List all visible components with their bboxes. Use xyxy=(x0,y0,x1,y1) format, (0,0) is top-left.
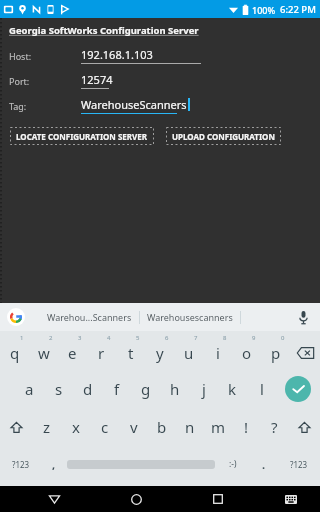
button[interactable]: i xyxy=(203,331,232,370)
button[interactable]: e xyxy=(58,331,87,370)
staticText: 6:22 PM xyxy=(280,3,316,16)
staticText: i xyxy=(216,343,220,363)
button[interactable]: Recent apps xyxy=(201,486,235,512)
staticText: p xyxy=(271,343,281,363)
staticText: 5 xyxy=(136,334,140,342)
button[interactable]: Shift xyxy=(288,408,320,446)
staticText: z xyxy=(43,417,51,437)
staticText: t xyxy=(128,343,134,363)
staticText: 0 xyxy=(281,334,285,342)
staticText: d xyxy=(83,379,93,399)
staticText: 3 xyxy=(78,334,82,342)
button[interactable]: x xyxy=(61,408,90,446)
staticText: e xyxy=(68,343,77,363)
staticText: ?123 xyxy=(290,459,308,470)
staticText: c xyxy=(101,417,109,437)
staticText: v xyxy=(130,417,138,437)
staticText: 192.168.1.103 xyxy=(81,47,153,62)
staticText: 2 xyxy=(49,334,53,342)
staticText: o xyxy=(242,343,252,363)
staticText: r xyxy=(98,343,105,363)
staticText: ? xyxy=(271,417,278,437)
staticText: 1 xyxy=(20,334,24,342)
button[interactable]: Switch keyboard xyxy=(276,486,306,512)
button[interactable]: ?123 xyxy=(278,446,320,482)
staticText: y xyxy=(156,343,164,363)
staticText: 100% xyxy=(252,4,276,16)
button[interactable]: p xyxy=(261,331,290,370)
button[interactable]: ! xyxy=(232,408,260,446)
button[interactable]: q xyxy=(0,331,29,370)
staticText: s xyxy=(55,379,63,399)
staticText: m xyxy=(211,417,226,437)
button[interactable]: Shift xyxy=(0,408,32,446)
button[interactable]: :-) xyxy=(216,446,250,482)
button[interactable]: f xyxy=(102,370,131,408)
button[interactable]: k xyxy=(218,370,247,408)
button[interactable]: Google search xyxy=(7,308,25,326)
button[interactable]: y xyxy=(145,331,174,370)
staticText: Tag: xyxy=(9,100,27,112)
staticText: UPLOAD CONFIGURATION xyxy=(172,131,275,142)
button[interactable]: Home xyxy=(119,486,153,512)
button[interactable]: w xyxy=(29,331,58,370)
staticText: k xyxy=(228,379,237,399)
staticText: q xyxy=(10,343,20,363)
staticText: n xyxy=(185,417,195,437)
button[interactable]: Space xyxy=(66,446,216,482)
staticText: h xyxy=(170,379,180,399)
button[interactable]: UPLOAD CONFIGURATION xyxy=(165,127,282,145)
staticText: Port: xyxy=(9,75,30,87)
staticText: Georgia SoftWorks Configuration Server xyxy=(9,24,199,37)
staticText: a xyxy=(25,379,34,399)
staticText: 6 xyxy=(165,334,169,342)
staticText: 7 xyxy=(194,334,198,342)
button[interactable]: v xyxy=(119,408,148,446)
staticText: Warehou...Scanners xyxy=(47,311,132,323)
button[interactable]: m xyxy=(204,408,232,446)
button[interactable]: Back xyxy=(37,486,71,512)
staticText: g xyxy=(141,379,151,399)
button[interactable]: ? xyxy=(260,408,288,446)
staticText: :-) xyxy=(229,458,237,470)
button[interactable]: r xyxy=(87,331,116,370)
staticText: ! xyxy=(244,417,249,437)
button[interactable]: z xyxy=(32,408,61,446)
button[interactable]: Comma xyxy=(42,446,66,482)
staticText: 8 xyxy=(223,334,227,342)
staticText: 9 xyxy=(252,334,256,342)
button[interactable]: Backspace xyxy=(290,331,320,370)
staticText: l xyxy=(260,379,264,399)
button[interactable]: l xyxy=(247,370,276,408)
button[interactable]: b xyxy=(148,408,176,446)
button[interactable]: g xyxy=(131,370,160,408)
button[interactable]: Warehousescanners xyxy=(143,308,237,326)
button[interactable]: h xyxy=(160,370,189,408)
staticText: j xyxy=(202,379,206,399)
staticText: x xyxy=(72,417,80,437)
button[interactable]: Voice input xyxy=(292,306,314,328)
button[interactable]: n xyxy=(176,408,204,446)
button[interactable]: t xyxy=(116,331,145,370)
staticText: ?123 xyxy=(12,459,30,470)
button[interactable]: o xyxy=(232,331,261,370)
button[interactable]: j xyxy=(189,370,218,408)
button[interactable]: Period xyxy=(250,446,278,482)
staticText: LOCATE CONFIGURATION SERVER xyxy=(16,131,148,142)
button[interactable]: Enter xyxy=(276,370,320,408)
button[interactable]: s xyxy=(44,370,73,408)
button[interactable]: LOCATE CONFIGURATION SERVER xyxy=(9,127,155,145)
staticText: , xyxy=(52,457,56,472)
button[interactable]: u xyxy=(174,331,203,370)
staticText: . xyxy=(262,457,266,472)
staticText: f xyxy=(114,379,120,399)
button[interactable]: ?123 xyxy=(0,446,42,482)
staticText: 12574 xyxy=(81,72,113,87)
staticText: b xyxy=(157,417,167,437)
button[interactable]: d xyxy=(73,370,102,408)
button[interactable]: c xyxy=(90,408,119,446)
button[interactable]: Warehou...Scanners xyxy=(43,308,136,326)
button[interactable]: a xyxy=(15,370,44,408)
staticText: WarehouseScanners xyxy=(81,97,187,112)
staticText: Warehousescanners xyxy=(147,311,233,323)
